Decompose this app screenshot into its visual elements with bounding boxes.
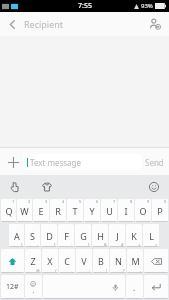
staticText: T (72, 205, 78, 217)
staticText: V (81, 255, 87, 267)
staticText: 3 (45, 199, 48, 204)
button[interactable]: K (126, 224, 142, 247)
staticText: 12# (6, 282, 19, 292)
staticText: Q (5, 205, 13, 217)
staticText: J (116, 230, 119, 242)
button[interactable]: Shift (1, 249, 24, 273)
button[interactable]: H (92, 224, 108, 247)
button[interactable]: Theme (37, 177, 57, 197)
button[interactable]: R (50, 199, 66, 222)
staticText: R (55, 205, 61, 217)
staticText: \ (21, 242, 23, 247)
button[interactable]: Space (43, 275, 125, 299)
staticText: @ (36, 268, 40, 273)
staticText: 4 (62, 199, 65, 204)
button[interactable]: T (67, 199, 83, 222)
staticText: ; (71, 242, 73, 247)
button[interactable]: Q (1, 199, 16, 222)
staticText: N (115, 255, 122, 267)
staticText: X (47, 255, 53, 267)
button[interactable]: W (17, 199, 32, 222)
button[interactable]: O (135, 199, 151, 222)
staticText: : (89, 268, 91, 273)
button[interactable]: E (33, 199, 49, 222)
button[interactable]: Send (142, 152, 166, 172)
button[interactable]: Enter (144, 275, 168, 299)
staticText: Y (89, 205, 95, 217)
button[interactable]: Backspace (144, 249, 168, 273)
staticText: D (46, 230, 53, 242)
staticText: & (104, 242, 107, 247)
staticText: 5 (79, 199, 82, 204)
button[interactable]: Handwriting (5, 177, 25, 197)
staticText: A (14, 230, 20, 242)
button[interactable]: C (59, 249, 75, 273)
staticText: S (30, 230, 35, 242)
button[interactable]: Y (84, 199, 100, 222)
button[interactable]: G (75, 224, 91, 247)
staticText: 93% (141, 2, 153, 10)
button[interactable]: D (41, 224, 57, 247)
button[interactable]: J (109, 224, 125, 247)
staticText: F (64, 230, 69, 242)
button[interactable]: Z (25, 249, 41, 273)
button[interactable]: L (143, 224, 159, 247)
button[interactable]: Comma (25, 275, 42, 299)
staticText: . (140, 268, 142, 273)
staticText: G (80, 230, 87, 242)
staticText: , (33, 287, 35, 295)
button[interactable]: Back (0, 12, 24, 36)
staticText: E (38, 205, 44, 217)
button[interactable]: I (118, 199, 134, 222)
staticText: . (133, 282, 136, 293)
button[interactable]: V (76, 249, 92, 273)
staticText: 9 (147, 199, 150, 204)
staticText: 6 (96, 199, 99, 204)
button[interactable]: B (93, 249, 109, 273)
button[interactable]: N (110, 249, 126, 273)
button[interactable]: U (101, 199, 117, 222)
staticText: 7 (113, 199, 116, 204)
staticText: } (88, 242, 90, 247)
staticText: L (149, 230, 154, 242)
button[interactable]: P (152, 199, 168, 222)
button[interactable]: A (9, 224, 24, 247)
button[interactable]: X (42, 249, 58, 273)
staticText: Recipient (24, 18, 141, 30)
button[interactable]: Period (126, 275, 143, 299)
staticText: O (139, 205, 147, 217)
button[interactable]: Emoji (144, 177, 164, 197)
staticText: 7:55 (78, 1, 92, 11)
staticText: / (55, 268, 57, 273)
button[interactable]: F (58, 224, 74, 247)
staticText: P (157, 205, 163, 217)
staticText: K (131, 230, 137, 242)
staticText: H (97, 230, 104, 242)
staticText: { (54, 242, 56, 247)
staticText: 8 (130, 199, 133, 204)
staticText: + (138, 242, 141, 247)
staticText: C (64, 255, 70, 267)
staticText: U (106, 205, 113, 217)
staticText: M (131, 255, 140, 267)
staticText: 0 (164, 199, 167, 204)
button[interactable]: Attach (3, 152, 23, 172)
button[interactable]: Text message (23, 154, 142, 170)
staticText: ☺ (30, 280, 37, 287)
staticText: 2 (28, 199, 31, 204)
staticText: Send (145, 157, 164, 168)
staticText: W (20, 205, 29, 217)
button[interactable]: Add recipient (141, 12, 169, 36)
button[interactable]: S (25, 224, 40, 247)
staticText: B (98, 255, 104, 267)
staticText: Text message (30, 157, 82, 168)
staticText: ? (123, 268, 125, 273)
staticText: , (72, 268, 74, 273)
staticText: # (121, 242, 124, 247)
staticText: Z (30, 255, 36, 267)
staticText: - (37, 242, 39, 247)
button[interactable]: 12# (1, 275, 24, 299)
button[interactable]: M (127, 249, 143, 273)
staticText: = (155, 242, 158, 247)
staticText: ! (106, 268, 108, 273)
